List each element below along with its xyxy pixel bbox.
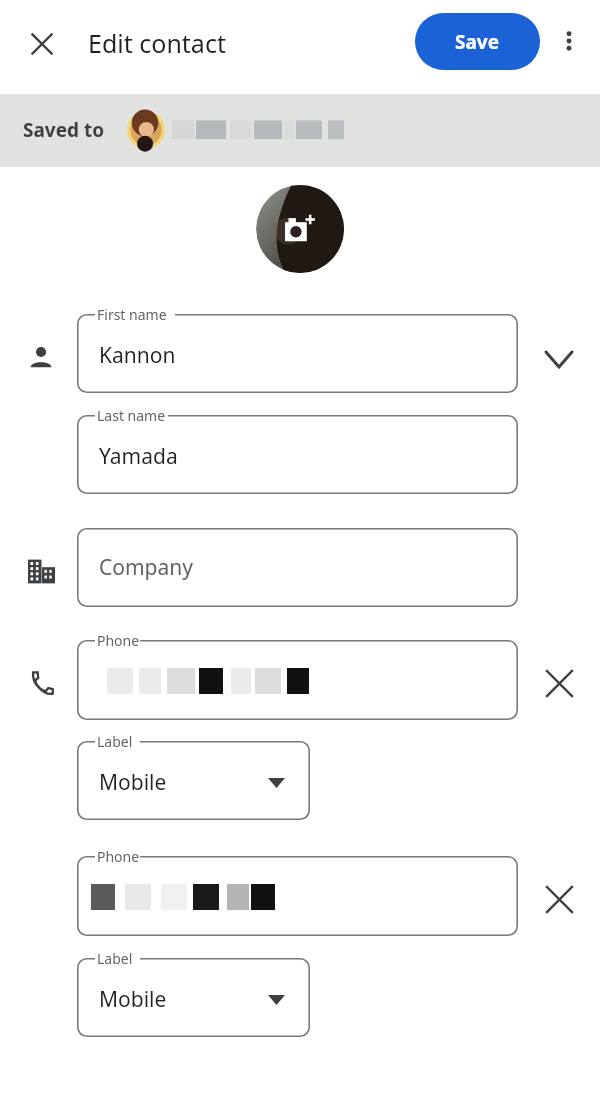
staticText: Kannon <box>99 341 176 370</box>
button[interactable]: Name <box>20 337 62 379</box>
button[interactable]: Delete phone <box>537 877 581 921</box>
button[interactable]: Select label <box>266 773 286 793</box>
staticText: Yamada <box>99 442 178 471</box>
staticText: Label <box>97 949 133 968</box>
button[interactable]: Close <box>18 20 66 68</box>
staticText: Phone <box>97 631 140 650</box>
button[interactable]: Phone <box>20 662 62 704</box>
button[interactable]: Label <box>77 958 310 1037</box>
button[interactable]: Change photo <box>256 185 344 273</box>
button[interactable]: Last name <box>77 415 518 494</box>
staticText: Last name <box>97 406 166 425</box>
staticText: Mobile <box>99 768 167 797</box>
button[interactable]: Select label <box>266 990 286 1010</box>
button[interactable]: Expand name fields <box>537 337 581 381</box>
button[interactable]: First name <box>77 314 518 393</box>
staticText: Mobile <box>99 985 167 1014</box>
staticText: Company <box>99 553 193 582</box>
staticText: Save <box>455 29 500 55</box>
button[interactable]: Delete phone <box>537 661 581 705</box>
button[interactable]: Phone <box>77 640 518 720</box>
button[interactable]: Label <box>77 741 310 820</box>
staticText: Phone <box>97 847 140 866</box>
staticText: Saved to <box>23 117 105 143</box>
staticText: Label <box>97 732 133 751</box>
button[interactable]: More options <box>546 18 592 64</box>
button[interactable]: Phone <box>77 856 518 936</box>
button[interactable]: Save <box>415 13 540 70</box>
staticText: First name <box>97 305 167 324</box>
button[interactable]: Company <box>77 528 518 607</box>
button[interactable]: Saved to <box>0 94 600 167</box>
button[interactable]: Company <box>20 550 62 592</box>
staticText: Edit contact <box>88 26 226 60</box>
